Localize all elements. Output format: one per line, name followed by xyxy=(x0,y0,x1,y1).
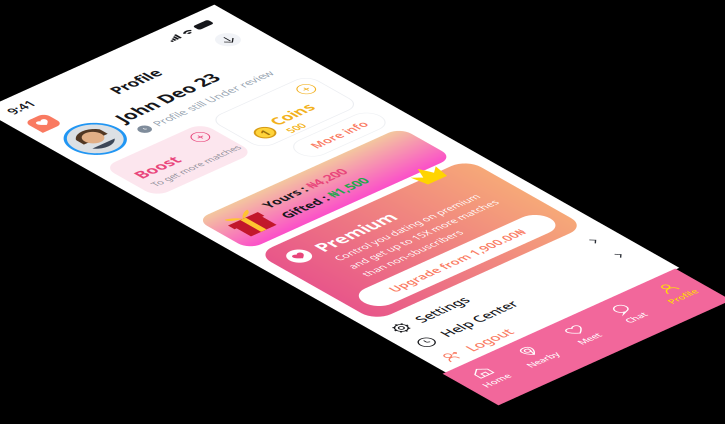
staticText: 500 xyxy=(249,275,276,296)
staticText: John Deo 23 xyxy=(111,109,275,147)
button[interactable]: More info xyxy=(224,311,361,355)
button[interactable]: 1 xyxy=(196,201,361,297)
button[interactable]: Share profile xyxy=(329,58,361,90)
staticText: Profile still Under review xyxy=(137,155,333,178)
staticText: Profile xyxy=(151,58,228,89)
staticText: Coins xyxy=(249,242,314,274)
button[interactable]: App home xyxy=(19,57,53,91)
button[interactable]: Boost xyxy=(19,201,183,297)
